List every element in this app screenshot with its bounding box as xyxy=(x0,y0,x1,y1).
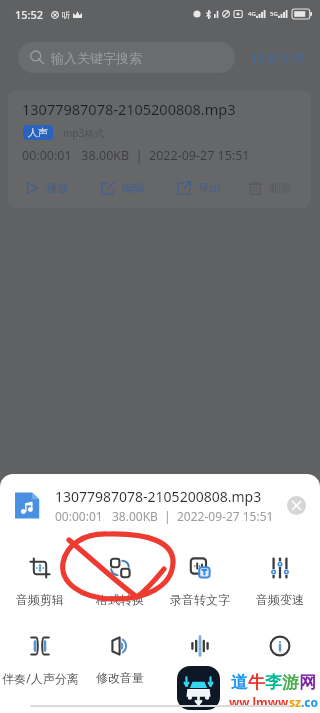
button[interactable]: 删除 xyxy=(248,178,308,198)
staticText: 录音转文字 xyxy=(170,592,230,607)
button[interactable]: 录音转文字 xyxy=(160,558,240,607)
button[interactable]: 导出 xyxy=(177,178,248,198)
staticText: 5G xyxy=(270,10,278,18)
staticText: 13077987078-2105200808.mp3 xyxy=(55,487,262,506)
staticText: 13077987078-2105200808.mp3 xyxy=(22,99,236,119)
button[interactable]: 伴奏/人声分离 xyxy=(0,636,80,686)
staticText: 网 xyxy=(299,672,316,693)
staticText: 15:52 xyxy=(15,7,44,22)
staticText: 道 xyxy=(231,672,248,693)
staticText: 音频变速 xyxy=(256,592,304,607)
staticText: 格式转换 xyxy=(96,592,144,607)
button[interactable]: 格式转换 xyxy=(80,558,160,607)
staticText: 游 xyxy=(282,672,299,693)
staticText: 人声 xyxy=(28,126,48,139)
button[interactable]: 修改音量 xyxy=(80,636,160,685)
button[interactable]: 音频剪辑 xyxy=(0,558,80,607)
staticText: 00:00:01 38.00KB | 2022-09-27 15:51 xyxy=(55,508,274,524)
staticText: mp3格式 xyxy=(63,126,105,140)
button[interactable]: 编辑 xyxy=(101,178,177,198)
staticText: 编辑 xyxy=(122,181,145,195)
button[interactable]: 音频变速 xyxy=(240,558,320,607)
button[interactable] xyxy=(240,636,320,686)
staticText: 听 xyxy=(62,10,70,20)
staticText: 李 xyxy=(265,672,282,693)
staticText: 牛 xyxy=(248,672,265,693)
staticText: 00:00:01 38.00KB | 2022-09-27 15:51 xyxy=(22,147,250,164)
staticText: 播放 xyxy=(46,181,69,195)
staticText: ww.lmww xyxy=(229,694,289,710)
staticText: 4G xyxy=(248,10,256,18)
staticText: 删除 xyxy=(269,181,292,195)
staticText: 导出 xyxy=(198,181,221,195)
staticText: 输入关键字搜索 xyxy=(51,50,142,66)
staticText: 批量管理 xyxy=(252,50,304,66)
staticText: 修改音量 xyxy=(96,670,144,685)
button[interactable]: 输入关键字搜索 xyxy=(18,42,235,73)
staticText: 音频剪辑 xyxy=(16,592,64,607)
button[interactable]: 播放 xyxy=(25,178,101,198)
staticText: .com xyxy=(301,694,320,713)
button[interactable]: 批量管理 xyxy=(250,46,306,70)
button[interactable]: Close xyxy=(287,496,306,515)
button[interactable] xyxy=(160,636,240,686)
staticText: 伴奏/人声分离 xyxy=(2,670,79,686)
staticText: sz xyxy=(289,694,301,710)
